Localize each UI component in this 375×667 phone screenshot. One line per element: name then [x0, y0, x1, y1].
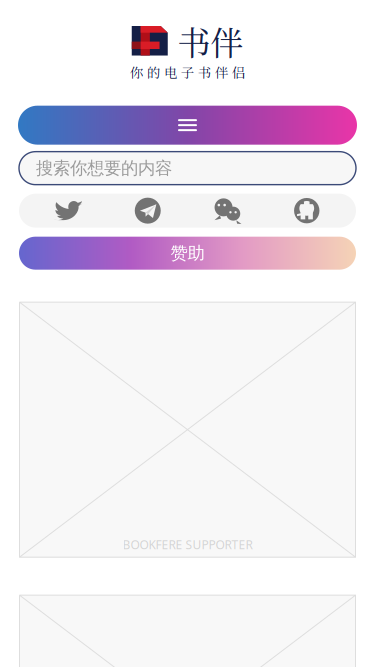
staticText: 搜索你想要的内容 — [36, 157, 172, 179]
button[interactable]: Twitter — [28, 194, 108, 228]
button[interactable]: 搜索你想要的内容 — [19, 152, 356, 185]
button[interactable]: Telegram — [108, 194, 187, 228]
button[interactable]: Menu — [18, 106, 357, 145]
staticText: 赞助 — [170, 242, 204, 264]
button[interactable]: GitHub — [267, 194, 346, 228]
staticText: 书伴 — [177, 17, 243, 65]
button[interactable]: 赞助 — [19, 237, 356, 270]
staticText: BOOKFERE SUPPORTER — [122, 537, 252, 553]
button[interactable]: WeChat — [187, 194, 267, 228]
staticText: 你的电子书伴侣 — [130, 62, 245, 82]
